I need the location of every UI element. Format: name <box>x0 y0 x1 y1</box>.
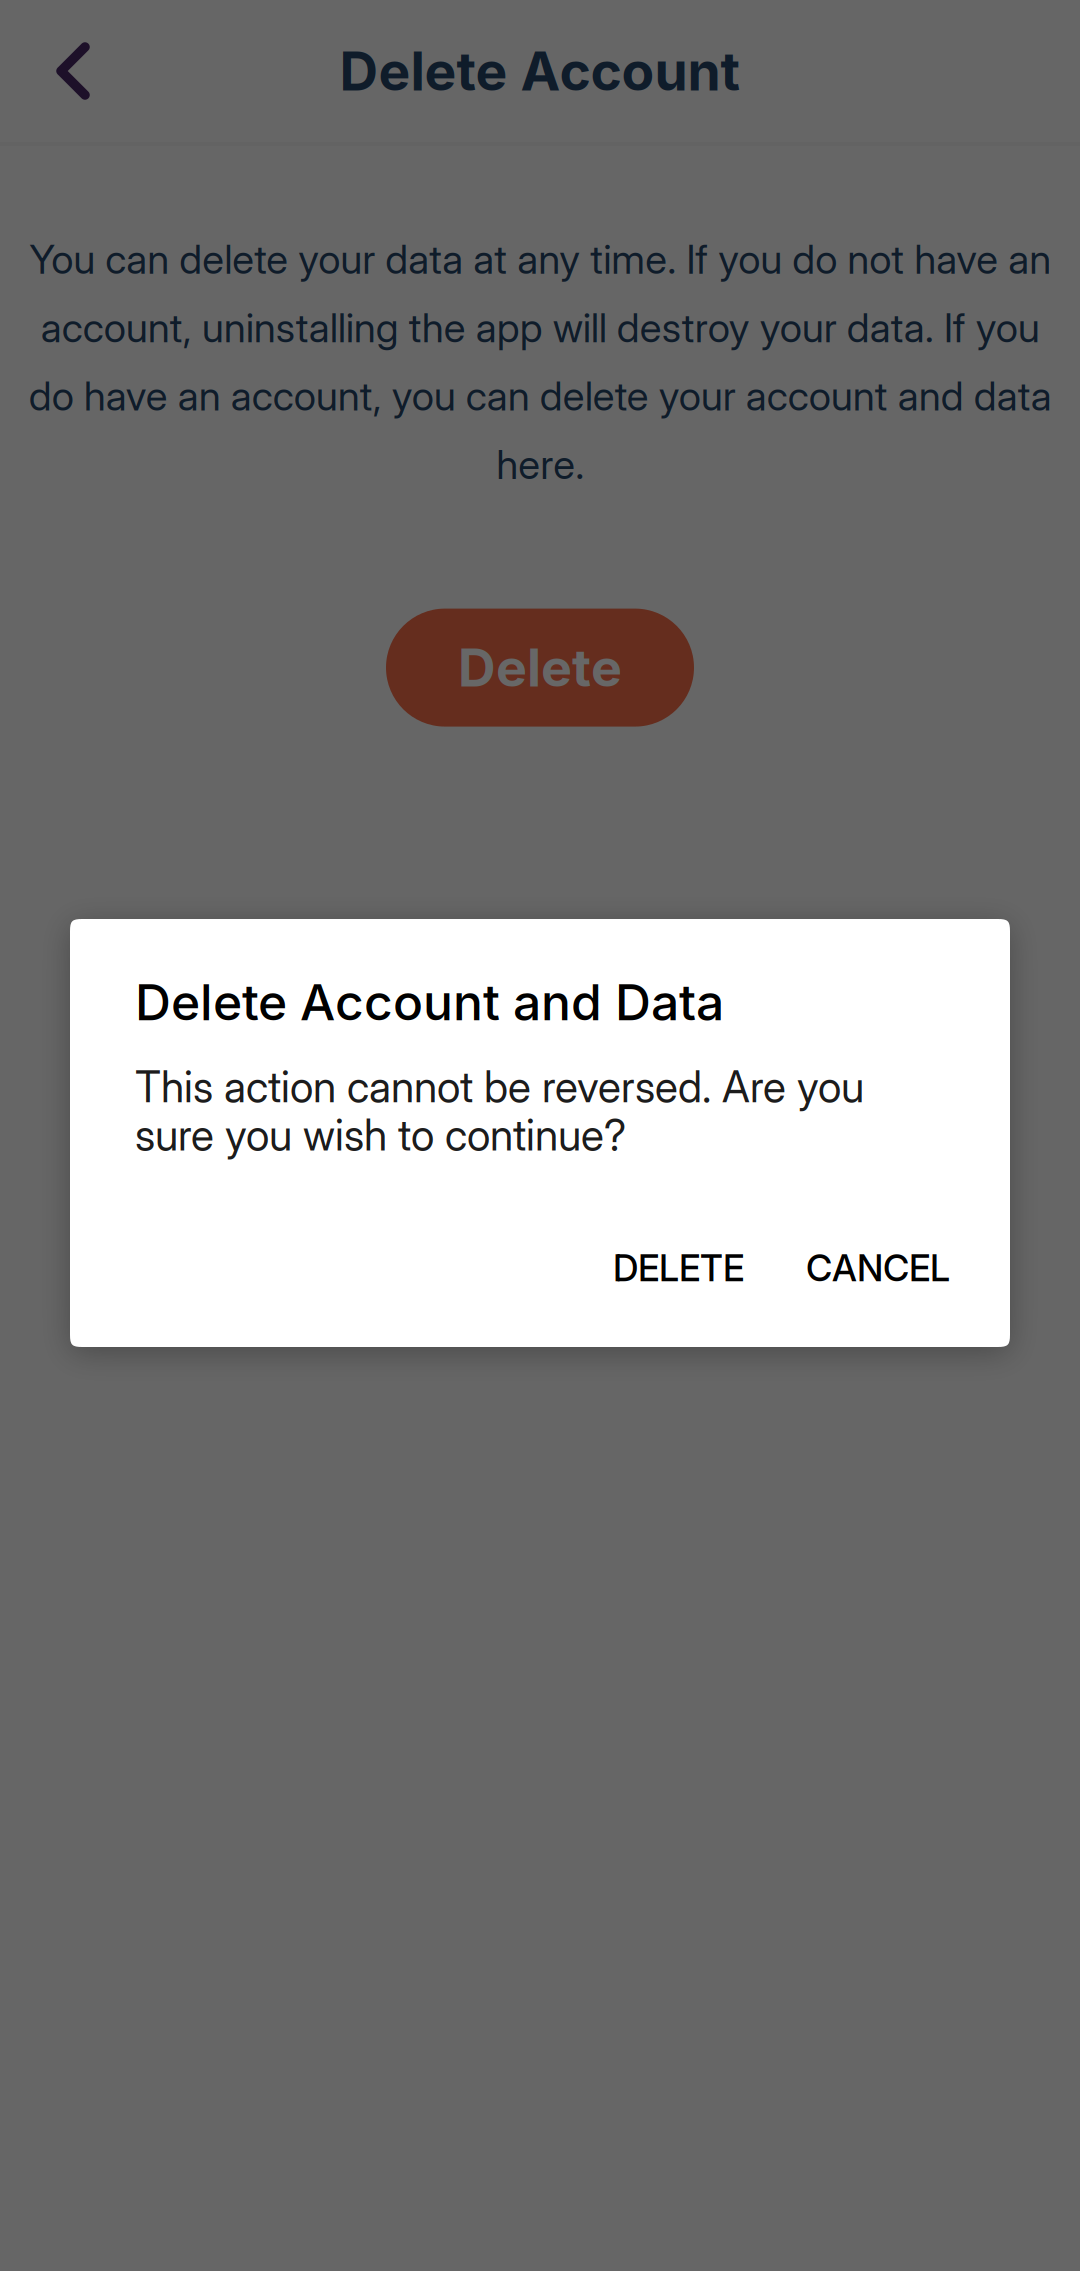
button[interactable]: CANCEL <box>784 1230 972 1306</box>
button[interactable]: Back <box>0 0 146 142</box>
staticText: Delete <box>458 636 622 699</box>
button[interactable]: Delete <box>386 609 694 727</box>
staticText: Delete Account and Data <box>135 972 724 1032</box>
staticText: DELETE <box>613 1246 744 1290</box>
staticText: You can delete your data at any time. If… <box>28 235 1051 489</box>
staticText: CANCEL <box>806 1246 950 1290</box>
staticText: This action cannot be reversed. Are you … <box>135 1061 864 1161</box>
button[interactable]: DELETE <box>591 1230 766 1306</box>
staticText: Delete Account <box>339 39 740 103</box>
